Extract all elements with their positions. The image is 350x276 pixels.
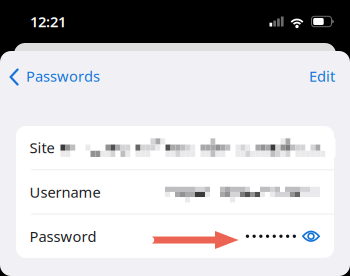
button[interactable]: Password [16,215,334,258]
staticText: Site [29,138,54,157]
button[interactable]: Passwords [0,56,108,98]
button[interactable]: Show password [302,230,320,243]
staticText: Passwords [26,66,100,86]
staticText: Edit [309,66,335,86]
button[interactable]: Site [16,126,334,169]
button[interactable]: Username [16,170,334,214]
staticText: Username [29,182,100,202]
button[interactable]: Edit [299,56,350,98]
staticText: 12:21 [30,12,66,31]
staticText: Password [29,226,96,246]
